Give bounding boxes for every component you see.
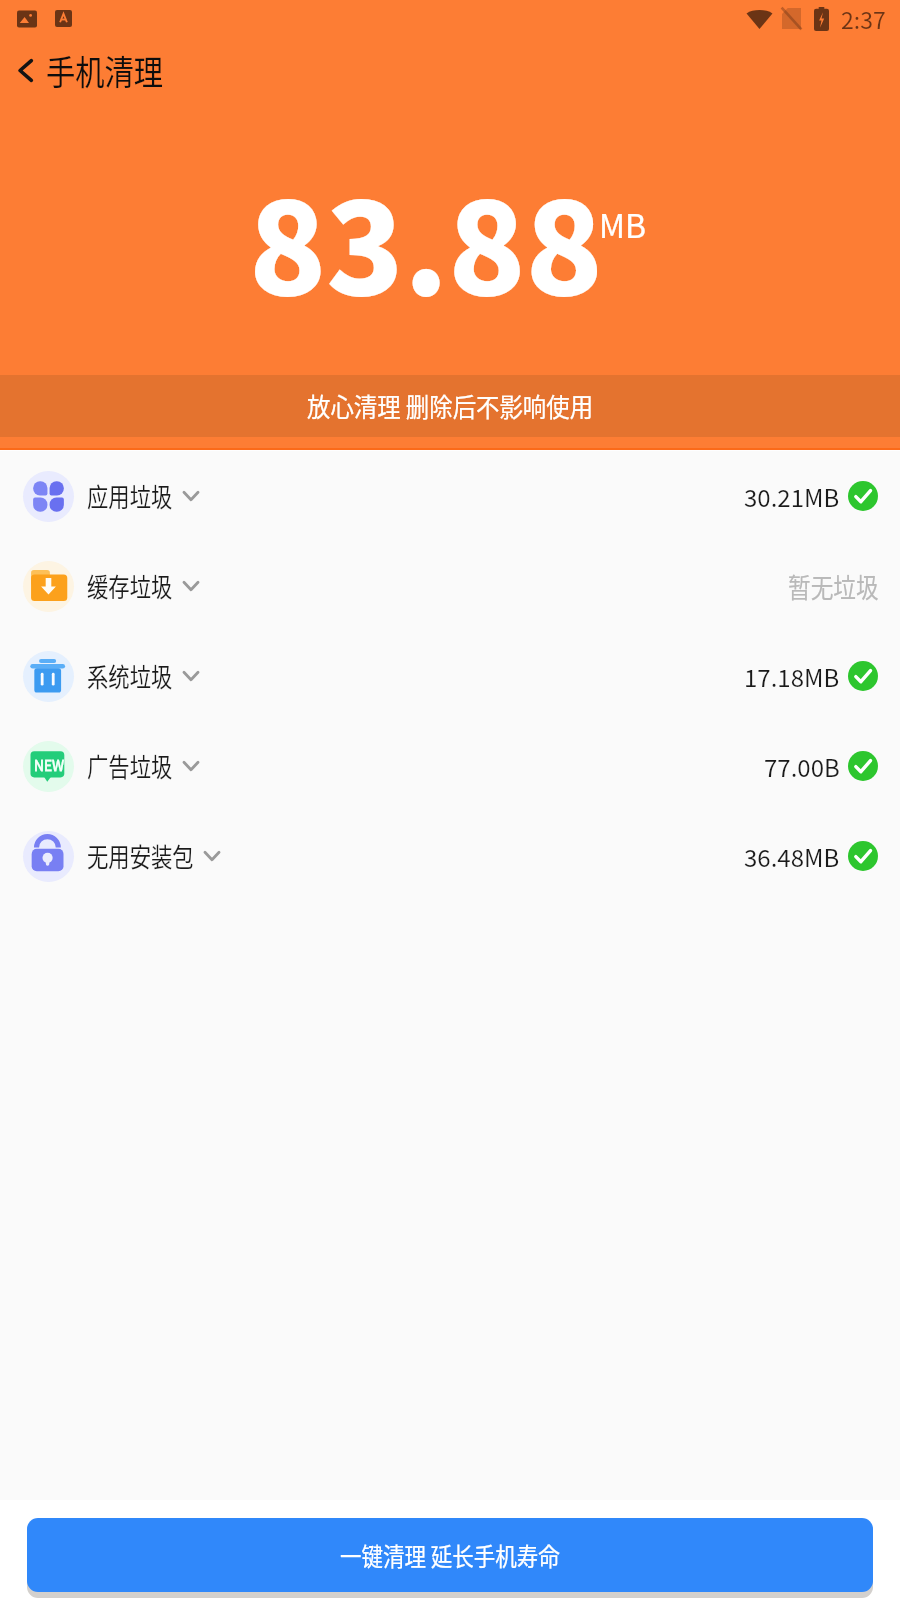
- staticText: 放心清理 删除后不影响使用: [307, 387, 593, 425]
- button[interactable]: 缓存垃圾: [0, 541, 900, 631]
- button[interactable]: 应用垃圾: [0, 451, 900, 541]
- button[interactable]: 无用安装包: [0, 811, 900, 901]
- staticText: 缓存垃圾: [87, 567, 173, 605]
- button[interactable]: 一键清理 延长手机寿命: [27, 1518, 873, 1592]
- staticText: 30.21MB: [744, 479, 840, 514]
- staticText: 17.18MB: [744, 659, 840, 694]
- button[interactable]: 系统垃圾: [0, 631, 900, 721]
- staticText: 暂无垃圾: [788, 567, 879, 606]
- staticText: 2:37: [841, 2, 886, 35]
- staticText: 手机清理: [46, 46, 163, 95]
- staticText: 83.88: [249, 148, 603, 332]
- staticText: NEW: [34, 754, 64, 776]
- button[interactable]: NEW: [0, 721, 900, 811]
- staticText: 广告垃圾: [87, 747, 173, 785]
- staticText: 应用垃圾: [87, 477, 173, 515]
- staticText: 一键清理 延长手机寿命: [340, 1537, 560, 1573]
- staticText: 系统垃圾: [87, 657, 173, 695]
- staticText: 无用安装包: [87, 837, 194, 875]
- staticText: 77.00B: [764, 749, 840, 784]
- staticText: 36.48MB: [744, 839, 840, 874]
- staticText: MB: [599, 201, 647, 247]
- button[interactable]: Back: [0, 45, 46, 95]
